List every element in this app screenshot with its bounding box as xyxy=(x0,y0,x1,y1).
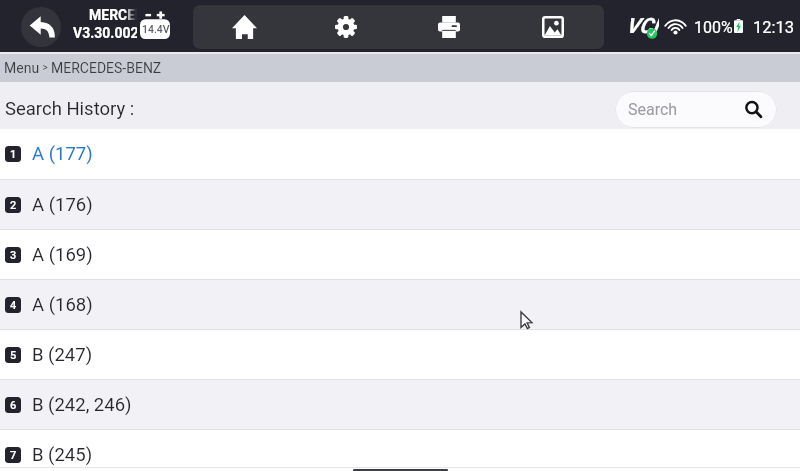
staticText: MERCEDES-BENZ xyxy=(89,7,137,23)
button[interactable]: 1 xyxy=(0,129,800,179)
button[interactable]: Menu xyxy=(4,60,162,76)
button[interactable]: 5 xyxy=(0,330,800,379)
button[interactable]: 2 xyxy=(0,180,800,229)
staticText: B (242, 246) xyxy=(32,394,132,416)
button[interactable]: Home xyxy=(193,5,295,49)
button[interactable]: 4 xyxy=(0,280,800,329)
staticText: 100% xyxy=(694,18,733,37)
other: Battery charging xyxy=(734,19,743,33)
staticText: V3.30.002 xyxy=(73,25,137,41)
staticText: 6 xyxy=(10,399,17,412)
button[interactable]: VCI connected xyxy=(625,13,661,37)
staticText: B (247) xyxy=(32,344,93,366)
staticText: MERCEDES-BENZ xyxy=(51,60,162,76)
staticText: 5 xyxy=(10,349,17,362)
other: Wi-Fi xyxy=(665,18,686,35)
button[interactable]: Screenshot xyxy=(501,5,604,49)
button[interactable]: 6 xyxy=(0,380,800,429)
staticText: 14.4V xyxy=(142,23,170,35)
staticText: A (168) xyxy=(32,294,93,316)
staticText: > xyxy=(40,62,51,74)
button[interactable]: 3 xyxy=(0,230,800,279)
other: Search xyxy=(743,99,764,120)
staticText: 2 xyxy=(10,199,17,212)
staticText: 1 xyxy=(10,148,17,161)
staticText: Search History : xyxy=(5,98,135,120)
staticText: A (176) xyxy=(32,194,93,216)
staticText: A (177) xyxy=(32,143,93,165)
button[interactable]: 7 xyxy=(0,430,800,471)
staticText: B (245) xyxy=(32,444,93,466)
button[interactable]: Print xyxy=(397,5,501,49)
staticText: VCI xyxy=(626,14,659,38)
staticText: 7 xyxy=(10,449,17,462)
button[interactable]: Settings xyxy=(295,5,397,49)
staticText: Menu xyxy=(4,60,40,76)
staticText: Search xyxy=(628,100,678,119)
button[interactable]: Search xyxy=(615,91,777,128)
button[interactable]: Back xyxy=(21,7,61,47)
staticText: 3 xyxy=(10,249,17,262)
staticText: 4 xyxy=(10,299,17,312)
staticText: 12:13 xyxy=(753,18,795,37)
staticText: A (169) xyxy=(32,244,93,266)
